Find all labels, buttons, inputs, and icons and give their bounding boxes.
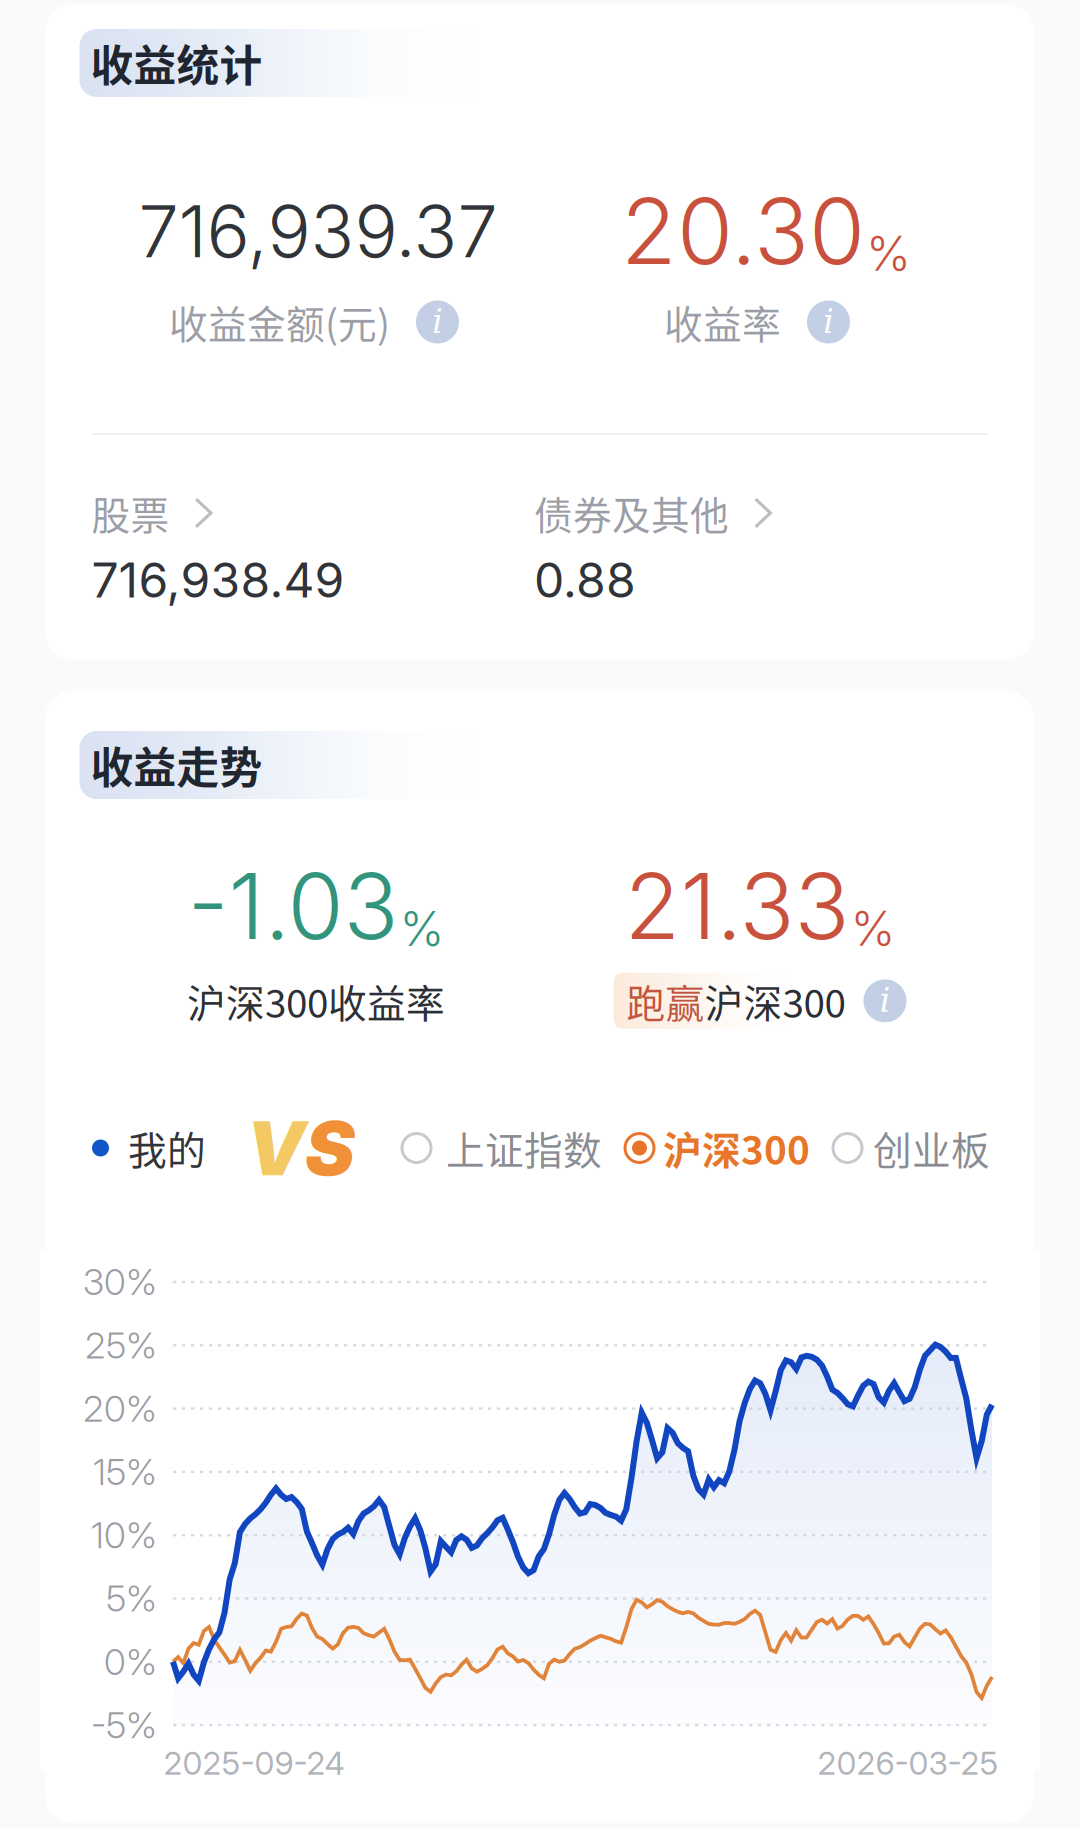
staticText: 跑赢 <box>626 973 704 1029</box>
button[interactable]: 关于跑赢沪深300 <box>863 979 906 1022</box>
button[interactable]: 收益金额(元) <box>169 294 390 350</box>
staticText: 沪深300 <box>663 1120 810 1176</box>
staticText: 25% <box>85 1323 157 1367</box>
staticText: 债券及其他 <box>534 485 729 541</box>
staticText: 716,939.37 <box>138 187 497 274</box>
button[interactable]: 收益率 <box>664 294 781 350</box>
button[interactable]: 股票 <box>91 485 344 609</box>
staticText: 收益走势 <box>90 734 262 796</box>
button[interactable]: -1.03 <box>187 851 445 1029</box>
staticText: 收益统计 <box>90 32 262 94</box>
button[interactable]: 716,939.37 <box>138 187 497 274</box>
staticText: % <box>399 899 444 957</box>
staticText: 0% <box>104 1640 157 1684</box>
staticText: -1.03 <box>187 851 398 961</box>
staticText: i <box>432 301 443 341</box>
staticText: 股票 <box>91 485 169 541</box>
button[interactable]: 关于收益率 <box>807 300 850 343</box>
button[interactable]: 上证指数 <box>401 1120 602 1176</box>
staticText: 我的 <box>128 1120 206 1176</box>
staticText: 创业板 <box>873 1120 990 1176</box>
staticText: 0.88 <box>534 551 636 609</box>
button[interactable]: 20.30 <box>621 176 911 286</box>
button[interactable]: 创业板 <box>832 1120 990 1176</box>
staticText: 21.33 <box>624 851 849 961</box>
staticText: V <box>246 1103 305 1193</box>
staticText: 收益率 <box>664 294 781 350</box>
staticText: 20% <box>83 1387 157 1430</box>
staticText: 20.30 <box>621 176 865 286</box>
staticText: 5% <box>106 1577 157 1620</box>
staticText: % <box>866 224 911 282</box>
staticText: 上证指数 <box>446 1120 602 1176</box>
staticText: i <box>823 301 834 341</box>
button[interactable]: 沪深300 <box>624 1120 810 1176</box>
staticText: -5% <box>91 1703 157 1747</box>
staticText: 716,938.49 <box>91 551 344 609</box>
staticText: i <box>879 980 890 1020</box>
button[interactable]: 债券及其他 <box>534 485 772 609</box>
staticText: % <box>850 899 895 957</box>
staticText: 15% <box>93 1450 157 1494</box>
staticText: 沪深300收益率 <box>187 973 445 1029</box>
button[interactable]: 21.33 <box>613 851 906 1029</box>
staticText: 收益金额(元) <box>169 294 390 350</box>
button[interactable]: 关于收益金额 <box>416 300 459 343</box>
staticText: 2025-09-24 <box>163 1744 344 1782</box>
staticText: 沪深300 <box>704 973 845 1029</box>
staticText: 10% <box>91 1513 157 1557</box>
staticText: 30% <box>83 1260 157 1304</box>
staticText: S <box>305 1103 355 1193</box>
staticText: 2026-03-25 <box>817 1744 998 1782</box>
